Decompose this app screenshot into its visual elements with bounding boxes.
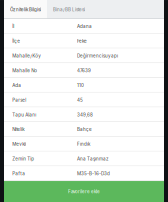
staticText: Değirmencisuyapı (77, 53, 118, 59)
staticText: Mevkii (12, 141, 26, 147)
button[interactable]: Nitelik (4, 122, 164, 137)
button[interactable]: Tapu Alanı (4, 107, 164, 122)
button[interactable]: Mahalle No (4, 63, 164, 78)
button[interactable]: Öznitelik Bilgisi (4, 0, 47, 19)
staticText: Adana (77, 24, 92, 29)
button[interactable]: İlçe (4, 34, 164, 48)
button[interactable]: Favorilere ekle (4, 181, 164, 202)
staticText: Öznitelik Bilgisi (10, 7, 41, 12)
staticText: Bina/BB Listesi (53, 7, 85, 12)
button[interactable]: Bina/BB Listesi (47, 0, 91, 19)
button[interactable]: Pafta (4, 166, 164, 181)
staticText: M35-B-16-D3d (77, 171, 110, 176)
staticText: 47639 (77, 68, 91, 73)
button[interactable]: Parsel (4, 93, 164, 107)
button[interactable]: Zemin Tip (4, 152, 164, 166)
staticText: Bahçe (77, 127, 92, 132)
staticText: Pafta (12, 171, 25, 176)
staticText: Feke (77, 38, 87, 44)
staticText: Ada (12, 82, 21, 88)
staticText: Zemin Tip (12, 156, 34, 162)
button[interactable]: İl (4, 19, 164, 34)
staticText: İl (12, 24, 14, 29)
staticText: Tapu Alanı (12, 112, 36, 117)
staticText: Mahalle/Köy (12, 53, 41, 59)
staticText: 45 (77, 97, 83, 103)
staticText: Fındık (77, 141, 90, 147)
staticText: Parsel (12, 97, 26, 103)
staticText: 349,68 (77, 112, 93, 117)
staticText: Nitelik (12, 127, 24, 132)
staticText: 110 (77, 82, 84, 88)
button[interactable]: Mevkii (4, 137, 164, 151)
button[interactable]: Mahalle/Köy (4, 48, 164, 63)
staticText: İlçe (12, 38, 20, 44)
staticText: Mahalle No (12, 68, 37, 73)
button[interactable]: Ada (4, 78, 164, 93)
staticText: Ana Taşınmaz (77, 156, 109, 162)
staticText: Favorilere ekle (68, 189, 100, 194)
